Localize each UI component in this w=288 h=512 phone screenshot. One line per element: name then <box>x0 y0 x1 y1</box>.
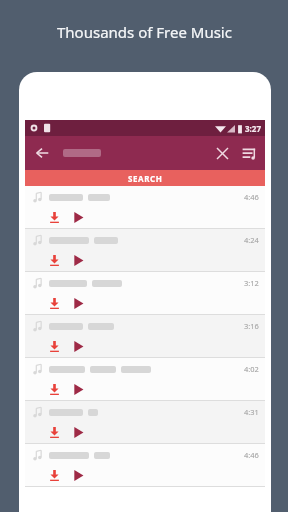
button[interactable]: Play <box>69 208 87 226</box>
staticText: 4:46 <box>244 192 259 202</box>
button[interactable]: Play <box>69 423 87 441</box>
staticText: 4:31 <box>244 407 259 417</box>
staticText: 3:27 <box>245 123 261 134</box>
button[interactable]: Download <box>45 251 63 269</box>
button[interactable]: Clear <box>209 140 235 166</box>
button[interactable]: Download <box>45 380 63 398</box>
button[interactable]: 4:02 <box>25 358 265 400</box>
button[interactable]: 4:31 <box>25 401 265 443</box>
button[interactable]: Download <box>45 423 63 441</box>
button[interactable] <box>63 149 101 157</box>
button[interactable]: 4:46 <box>25 444 265 486</box>
button[interactable]: Play <box>69 294 87 312</box>
button[interactable]: Download <box>45 294 63 312</box>
staticText: 3:12 <box>244 278 259 288</box>
staticText: 4:02 <box>244 364 259 374</box>
button[interactable]: SEARCH <box>25 170 265 186</box>
staticText: 3:16 <box>244 321 259 331</box>
button[interactable]: Play <box>69 251 87 269</box>
staticText: SEARCH <box>128 173 163 184</box>
button[interactable]: Download <box>45 208 63 226</box>
button[interactable]: Play <box>69 337 87 355</box>
button[interactable]: Back <box>28 139 56 167</box>
button[interactable]: Download <box>45 466 63 484</box>
button[interactable]: Download <box>45 337 63 355</box>
button[interactable]: Play <box>69 466 87 484</box>
button[interactable]: 3:12 <box>25 272 265 314</box>
button[interactable]: 4:24 <box>25 229 265 271</box>
staticText: 4:24 <box>244 235 259 245</box>
button[interactable]: Play <box>69 380 87 398</box>
staticText: Thousands of Free Music <box>57 22 232 42</box>
button[interactable]: 4:46 <box>25 186 265 228</box>
staticText: 4:46 <box>244 450 259 460</box>
button[interactable]: Playlist <box>235 139 263 167</box>
button[interactable]: 3:16 <box>25 315 265 357</box>
